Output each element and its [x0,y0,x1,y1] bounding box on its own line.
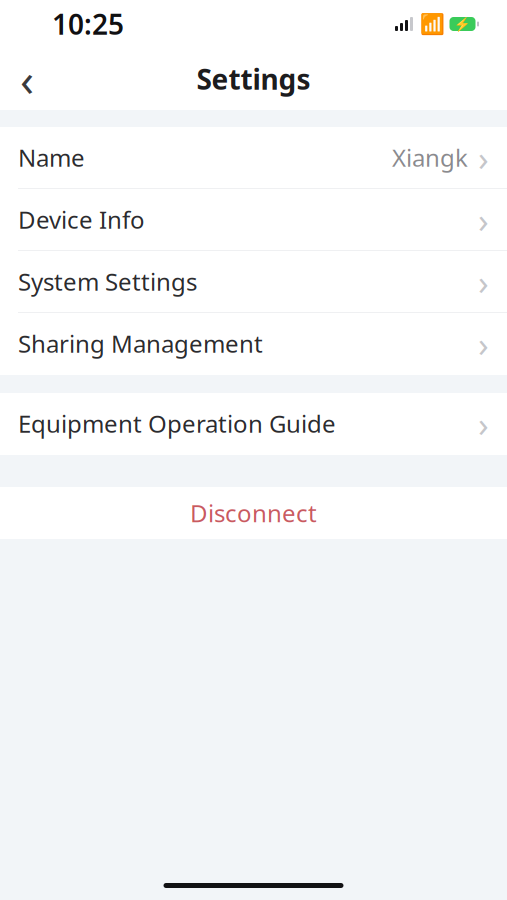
staticText: Device Info [18,204,145,235]
staticText: 10:25 [52,5,124,43]
staticText: › [478,258,489,304]
staticText: System Settings [18,266,197,297]
staticText: › [478,400,489,446]
staticText: Name [18,142,85,173]
staticText: ‹ [20,49,34,109]
staticText: › [478,320,489,366]
staticText: Xiangk [392,142,468,173]
button[interactable]: Device Info [0,189,507,251]
staticText: Disconnect [190,497,317,529]
staticText: Sharing Management [18,328,263,359]
button[interactable]: Back [0,52,54,106]
staticText: ⚡ [454,16,471,32]
staticText: › [478,196,489,242]
button[interactable]: Sharing Management [0,313,507,375]
button[interactable]: System Settings [0,251,507,313]
staticText: Settings [196,60,310,98]
staticText: Equipment Operation Guide [18,408,336,439]
button[interactable]: Disconnect [0,487,507,539]
button[interactable]: Name [0,127,507,189]
staticText: 📶 [419,13,444,35]
button[interactable]: Equipment Operation Guide [0,393,507,455]
staticText: › [478,134,489,180]
